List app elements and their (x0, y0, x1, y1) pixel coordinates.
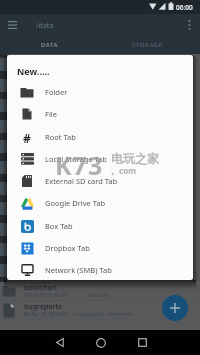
staticText: Local Storage Tab (45, 154, 107, 164)
button[interactable] (4, 15, 21, 35)
staticText: Root Tab (45, 132, 76, 142)
staticText: # (23, 130, 31, 144)
staticText: External SD card Tab (45, 176, 118, 186)
staticText: Network (SMB) Tab (45, 265, 112, 275)
staticText: File (45, 109, 57, 119)
staticText: New..... (17, 65, 50, 77)
staticText: bugreports (24, 302, 62, 312)
button[interactable]: Dropbox Tab (7, 237, 193, 259)
button[interactable]: External SD card Tab (7, 170, 193, 192)
button[interactable]: DATA (0, 36, 100, 54)
staticText: 。com (111, 165, 136, 176)
button[interactable] (162, 295, 188, 321)
staticText: bootchart (24, 283, 58, 293)
staticText: STORAGE (132, 41, 163, 49)
button[interactable] (48, 330, 72, 355)
staticText: 电玩之家 (111, 151, 159, 166)
button[interactable] (130, 330, 154, 355)
button[interactable]: STORAGE (97, 36, 197, 54)
staticText: 06:00 (176, 3, 193, 12)
button[interactable]: Folder (7, 81, 193, 103)
staticText: Folder (45, 87, 68, 97)
staticText: 01 Jan 70 01:00:00 (24, 292, 67, 299)
staticText: K73 (55, 148, 104, 182)
button[interactable]: Local Storage Tab (7, 148, 193, 170)
button[interactable] (89, 330, 113, 355)
button[interactable]: Google Drive Tab (7, 192, 193, 214)
staticText: Google Drive Tab (45, 198, 106, 208)
staticText: /data (36, 21, 54, 31)
staticText: DATA (41, 41, 59, 49)
staticText: 04 Apr 70 18:56:00 → bugreports rw=rw=rw (24, 311, 131, 318)
button[interactable]: # (7, 126, 193, 148)
button[interactable]: Box Tab (7, 215, 193, 237)
button[interactable] (180, 15, 198, 35)
button[interactable]: Network (SMB) Tab (7, 259, 193, 280)
staticText: Dropbox Tab (45, 243, 90, 253)
button[interactable]: File (7, 103, 193, 125)
staticText: read only (88, 292, 110, 299)
staticText: Box Tab (45, 221, 73, 231)
